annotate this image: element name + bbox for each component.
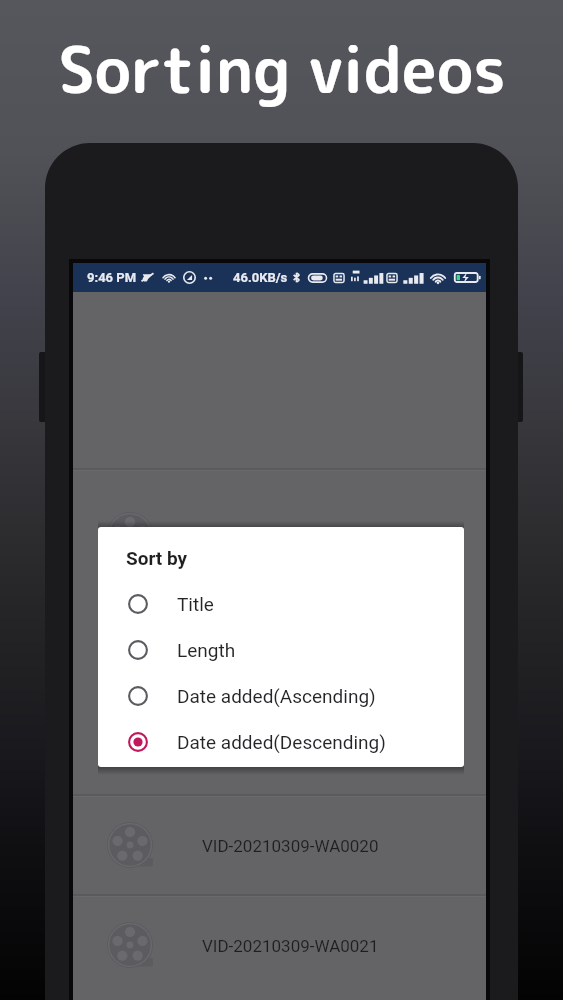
staticText: Date added(Ascending): [177, 685, 376, 707]
staticText: VID-20210309-WA0020: [202, 836, 379, 856]
staticText: 9:46 PM: [87, 270, 137, 285]
button[interactable]: VID-20210309-WA0021: [73, 897, 486, 994]
button[interactable]: VID-20210309-WA0020: [73, 797, 486, 894]
staticText: VID-20210309-WA0021: [202, 936, 379, 956]
button[interactable]: Date added(Ascending): [98, 673, 464, 719]
staticText: 46.0KB/s: [233, 270, 288, 285]
button[interactable]: Length: [98, 627, 464, 673]
staticText: Sort by: [126, 547, 188, 569]
staticText: Sorting videos: [58, 25, 506, 113]
staticText: Length: [177, 639, 236, 661]
staticText: Date added(Descending): [177, 731, 386, 753]
staticText: Title: [177, 593, 214, 615]
button[interactable]: Date added(Descending): [98, 719, 464, 765]
button[interactable]: Title: [98, 581, 464, 627]
